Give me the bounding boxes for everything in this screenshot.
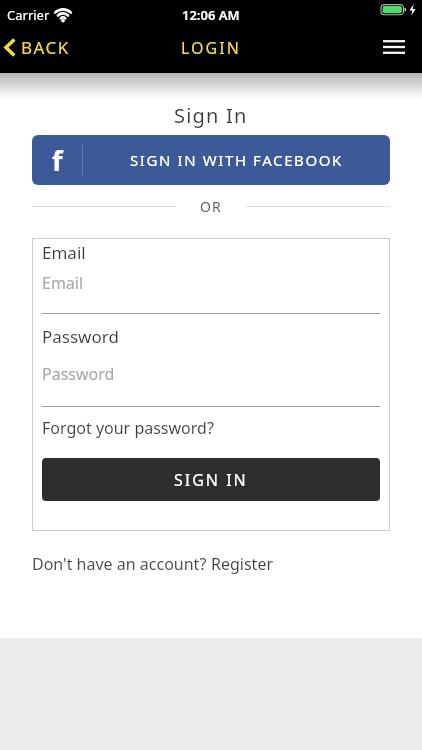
button[interactable]: Forgot your password? [42, 417, 214, 439]
staticText: Carrier [7, 6, 50, 24]
staticText: 12:06 AM [182, 6, 240, 24]
staticText: Email [42, 272, 84, 294]
staticText: Register [211, 553, 274, 575]
staticText: Don't have an account? [32, 553, 211, 575]
button[interactable]: BACK [4, 36, 70, 59]
staticText: LOGIN [181, 37, 241, 59]
staticText: Sign In [174, 102, 248, 129]
button[interactable]: f [32, 135, 390, 185]
button[interactable]: SIGN IN [42, 458, 380, 501]
staticText: Password [42, 363, 115, 385]
button[interactable] [383, 40, 405, 54]
staticText: Email [42, 241, 86, 264]
staticText: OR [200, 197, 222, 216]
staticText: BACK [21, 36, 70, 59]
staticText: Password [42, 325, 119, 348]
staticText: SIGN IN [174, 469, 248, 491]
staticText: f [52, 142, 63, 179]
button[interactable]: Don't have an account? [32, 553, 274, 575]
staticText: SIGN IN WITH FACEBOOK [130, 150, 343, 170]
